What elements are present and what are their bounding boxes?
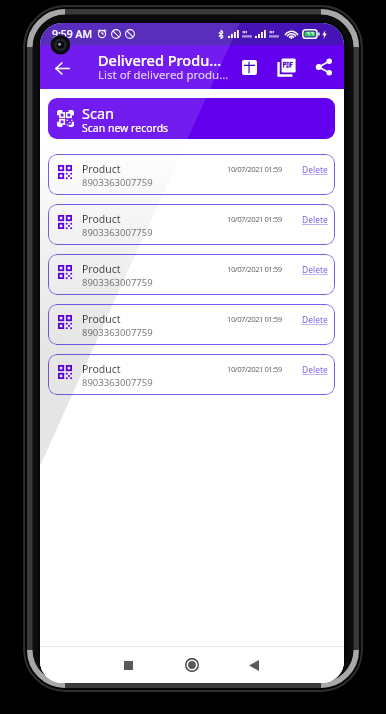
staticText: Delete [302,164,328,176]
staticText: Scan [82,103,115,123]
button[interactable]: Delete [301,261,329,279]
staticText: Delete [302,214,328,226]
button[interactable]: Product [48,254,335,295]
staticText: 9:59 AM [52,27,93,41]
button[interactable]: Delete [301,161,329,179]
staticText: 8903363007759 [82,376,153,389]
button[interactable]: Product [48,354,335,395]
staticText: Product [82,262,121,276]
staticText: 10/07/2021 01:59 [227,314,282,325]
staticText: 8903363007759 [82,326,153,339]
button[interactable]: Share [305,45,342,89]
button[interactable]: Navigate up [40,45,85,89]
staticText: Product [82,312,121,326]
staticText: Scan new records [82,121,169,135]
button[interactable]: Delete [301,211,329,229]
staticText: 8903363007759 [82,226,153,239]
button[interactable]: Home [175,648,209,682]
staticText: Product [82,362,121,376]
staticText: Delete [302,314,328,326]
button[interactable]: Product [48,204,335,245]
staticText: Product [82,162,121,176]
button[interactable]: Product [48,304,335,345]
staticText: 8903363007759 [82,176,153,189]
staticText: Delete [302,264,328,276]
button[interactable]: Delete [301,311,329,329]
staticText: 10/07/2021 01:59 [227,214,282,225]
staticText: Delivered Produ... [98,50,222,70]
staticText: List of delivered produ... [98,67,229,83]
button[interactable]: Product [48,154,335,195]
staticText: Product [82,212,121,226]
staticText: 10/07/2021 01:59 [227,364,282,375]
button[interactable]: Recent apps [111,648,145,682]
staticText: 8903363007759 [82,276,153,289]
staticText: 10/07/2021 01:59 [227,164,282,175]
staticText: 10/07/2021 01:59 [227,264,282,275]
button[interactable]: Delete [301,361,329,379]
button[interactable]: Scan [48,98,335,139]
staticText: Delete [302,364,328,376]
button[interactable]: Back [239,648,273,682]
button[interactable]: Export to Excel [231,45,268,89]
button[interactable]: Export to PDF [268,45,305,89]
